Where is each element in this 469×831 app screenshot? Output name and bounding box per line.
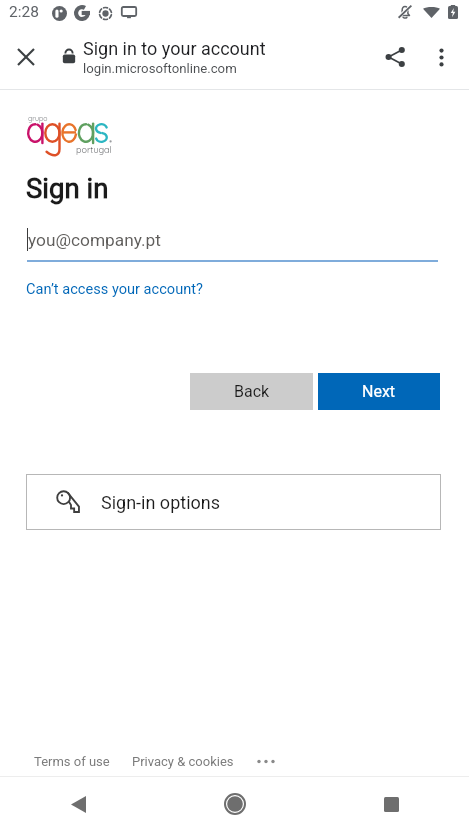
staticText: Back [234,382,270,401]
button[interactable]: Back [190,373,313,410]
button[interactable]: Privacy & cookies [132,754,234,769]
button[interactable]: More [248,749,284,773]
staticText: Sign in [26,172,109,204]
button[interactable]: Share [371,29,419,85]
staticText: grupo [28,114,48,123]
button[interactable]: Can’t access your account? [26,280,203,297]
button[interactable]: Sign-in options [26,474,441,530]
staticText: Sign in to your account [83,38,266,59]
staticText: login.microsoftonline.com [83,61,237,76]
button[interactable]: Back [0,777,157,831]
staticText: portugal [76,144,112,155]
button[interactable]: Terms of use [34,754,110,769]
staticText: Next [362,382,396,401]
staticText: 2:28 [9,3,39,21]
button[interactable]: Close [0,29,51,85]
staticText: you@company.pt [28,230,161,250]
staticText: Sign-in options [101,492,221,513]
button[interactable]: More options [419,29,463,85]
button[interactable]: Recents [313,777,469,831]
button[interactable]: Next [318,373,440,410]
button[interactable]: Home [157,777,313,831]
